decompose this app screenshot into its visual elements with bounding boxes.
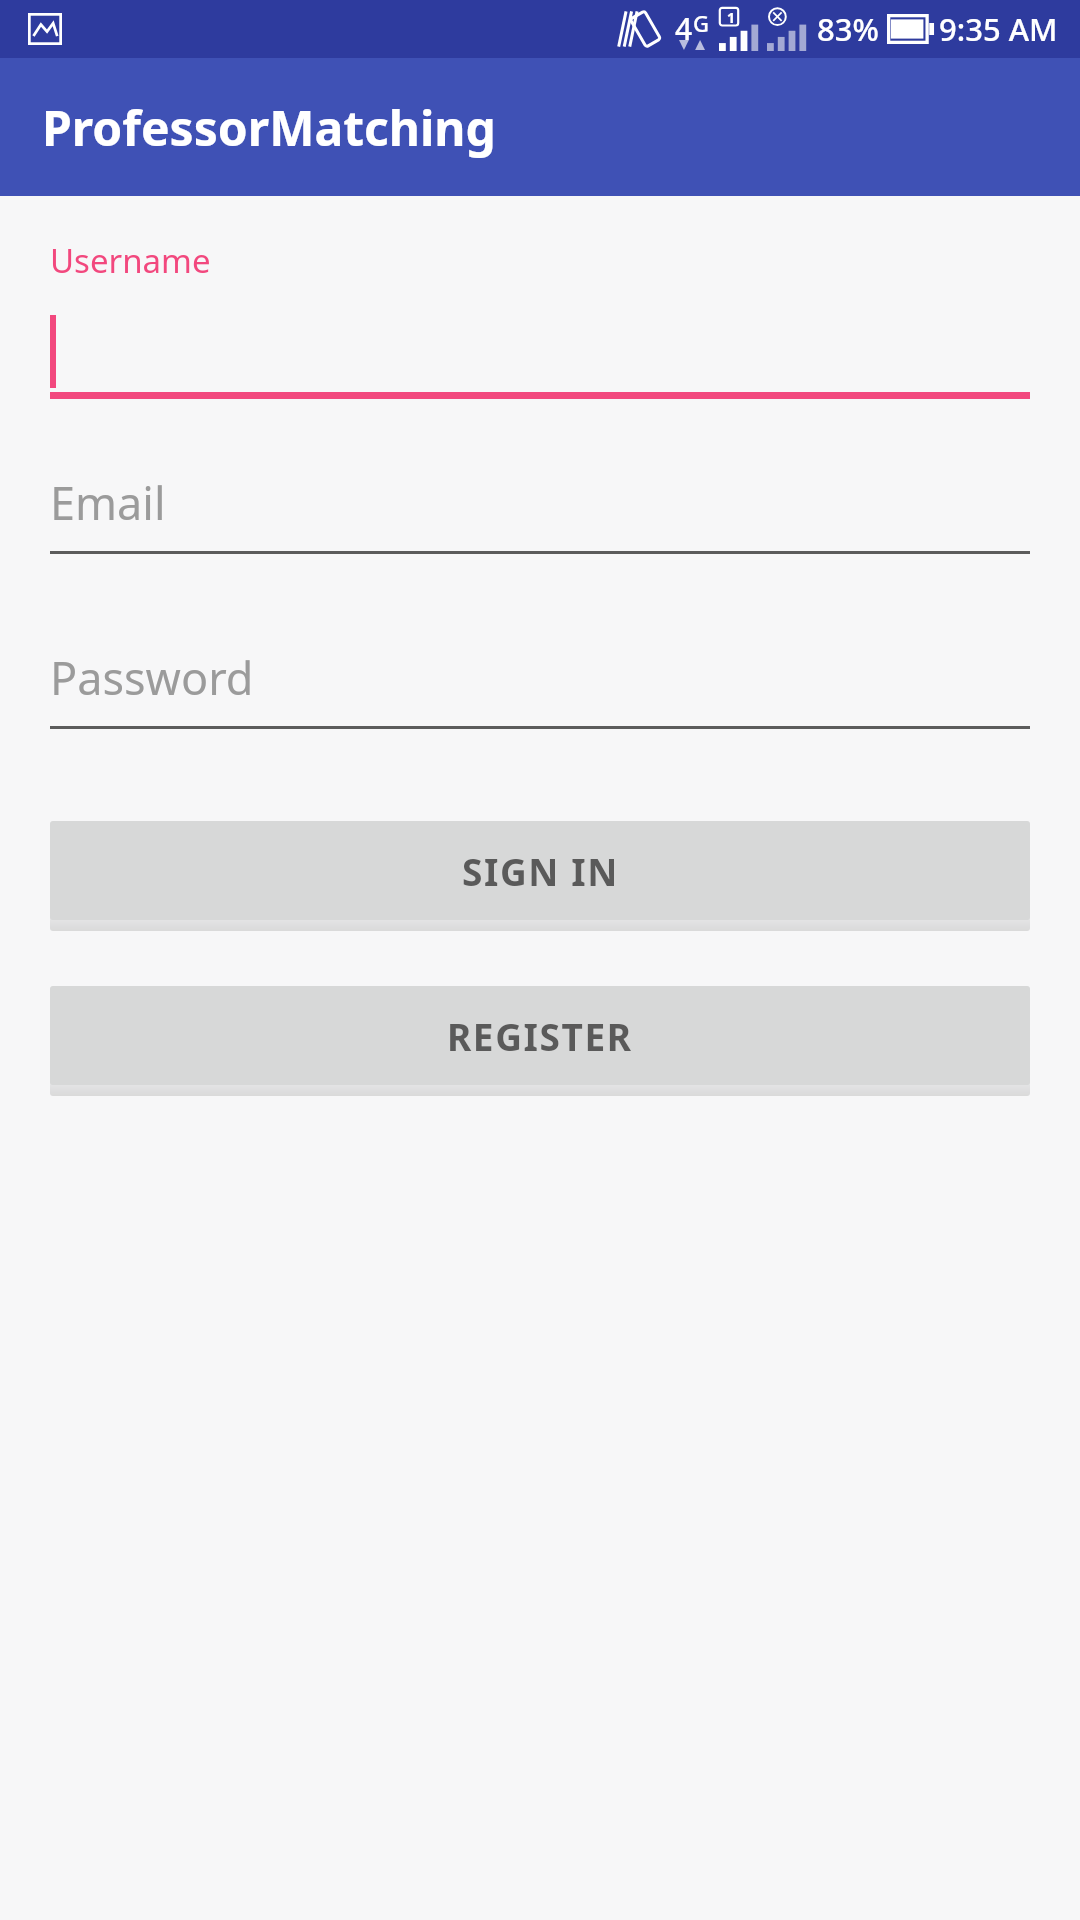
staticText: 4 [675, 8, 693, 49]
button[interactable]: Username [50, 238, 1030, 399]
staticText: 9:35 AM [939, 8, 1058, 50]
button[interactable]: SIGN IN [50, 821, 1030, 920]
staticText: Email [50, 472, 166, 533]
button[interactable]: REGISTER [50, 986, 1030, 1085]
staticText: Password [50, 647, 254, 708]
button[interactable]: Password [50, 646, 1030, 729]
staticText: REGISTER [447, 1011, 633, 1061]
staticText: 83% [817, 8, 879, 50]
staticText: G [693, 8, 709, 38]
staticText: ProfessorMatching [42, 95, 496, 160]
button[interactable]: Email [50, 471, 1030, 554]
staticText: 1 [727, 8, 736, 25]
staticText: Username [50, 238, 211, 283]
staticText: SIGN IN [462, 846, 619, 896]
